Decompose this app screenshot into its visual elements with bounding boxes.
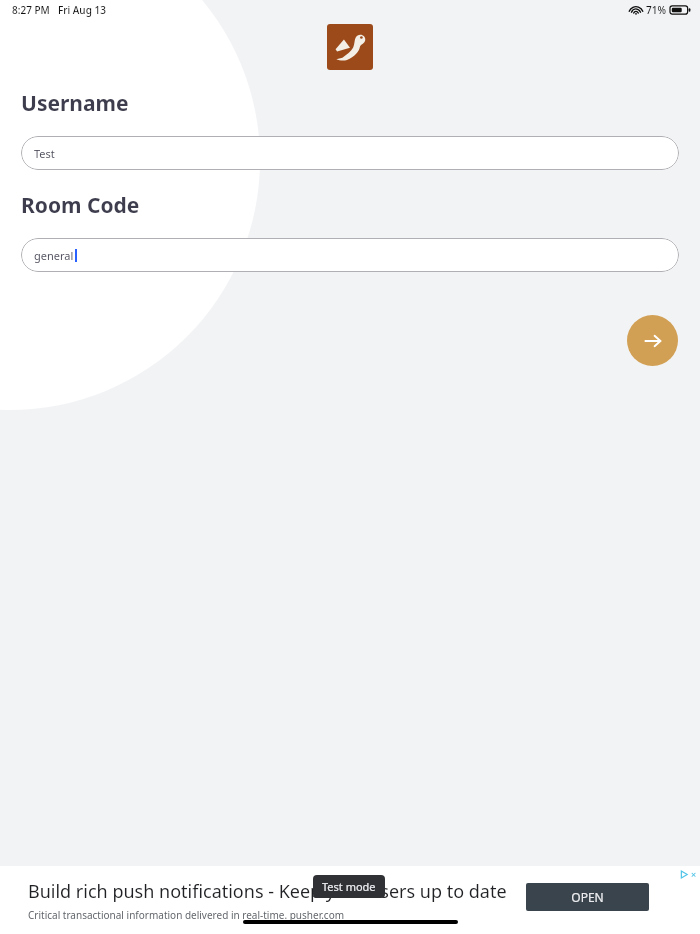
staticText: Critical transactional information deliv… (28, 908, 345, 922)
staticText: OPEN (571, 889, 604, 905)
button[interactable]: Continue (627, 315, 678, 366)
staticText: 71% (646, 3, 666, 17)
staticText: Username (21, 89, 129, 118)
staticText: 8:27 PM (12, 3, 50, 17)
staticText: Build rich push notifications - Keep you… (28, 879, 507, 904)
button[interactable]: general (21, 238, 679, 272)
staticText: Test mode (322, 879, 376, 894)
button[interactable]: OPEN (526, 883, 649, 911)
button[interactable]: Test (21, 136, 679, 170)
staticText: Fri Aug 13 (58, 3, 106, 17)
staticText: Room Code (21, 191, 140, 220)
staticText: Test (34, 146, 55, 161)
staticText: general (34, 248, 74, 263)
staticText: × (691, 868, 697, 880)
